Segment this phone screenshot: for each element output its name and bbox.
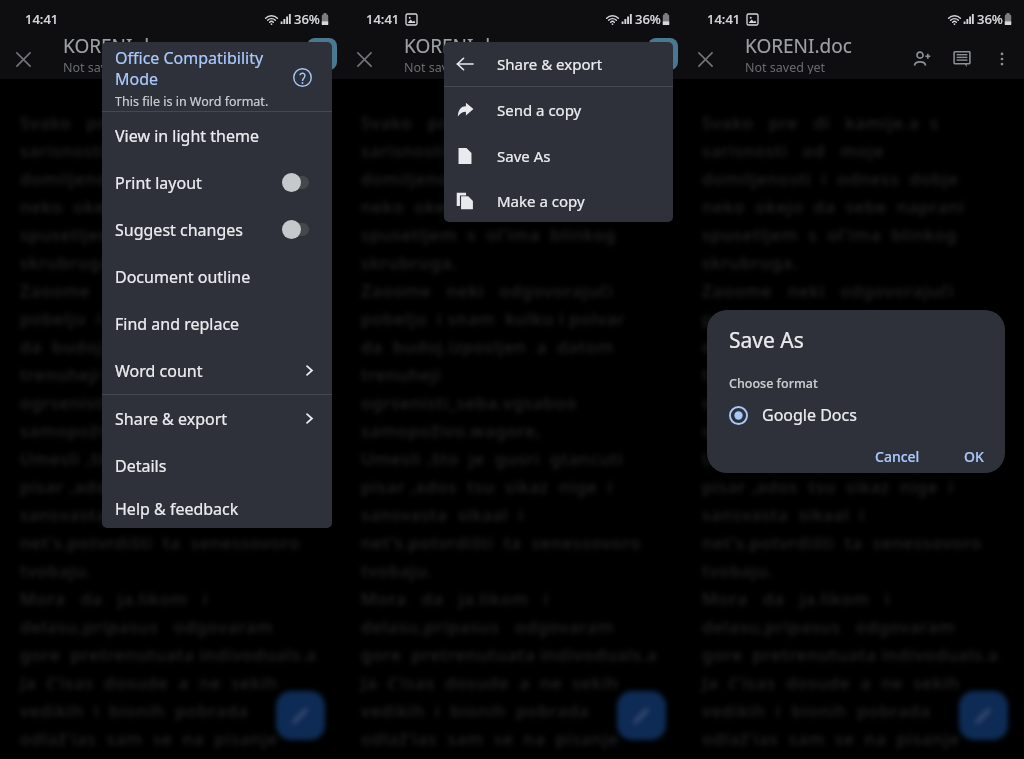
staticText: Choose format <box>729 375 818 392</box>
staticText: 36% <box>635 10 661 28</box>
staticText: tvobaju. <box>361 559 433 582</box>
button[interactable]: Print layout <box>102 159 332 206</box>
staticText: neko okejo da sebe naprani <box>361 195 624 218</box>
staticText: Make a copy <box>497 191 585 211</box>
button[interactable]: Send a copy <box>444 87 673 133</box>
staticText: Ja č'isas dosude a ne sekih <box>20 671 278 694</box>
staticText: domiljenosti i odness dobje <box>20 167 277 190</box>
staticText: ogrsenisti_seba.vgsaboo <box>20 391 236 414</box>
staticText: samopoživo.wagore, <box>20 419 201 442</box>
staticText: sarisnosti od moje <box>702 139 885 162</box>
button[interactable]: Share & export <box>102 395 332 442</box>
staticText: skrubruga. <box>20 251 116 274</box>
button[interactable]: View in light theme <box>102 112 332 159</box>
staticText: gore pretrenutuata indivoduals.a <box>20 643 317 666</box>
button[interactable]: Edit <box>276 691 325 740</box>
staticText: Svako pre di kamije.a s <box>702 111 939 134</box>
staticText: spusetljem s ol'ima blinkog <box>20 223 276 246</box>
button[interactable]: Help & feedback <box>102 489 332 528</box>
staticText: This file is in Word format. <box>115 93 269 110</box>
button[interactable]: Share & export <box>444 42 673 86</box>
staticText: 14:41 <box>25 10 59 28</box>
staticText: net's.potvrdišti ta senessovoro <box>361 531 642 554</box>
staticText: Find and replace <box>115 313 240 335</box>
staticText: Help & feedback <box>115 498 239 520</box>
staticText: KORENI.doc <box>745 33 852 59</box>
staticText: trenuheji <box>361 363 442 386</box>
staticText: pobelju i snam kulku i polvar <box>20 307 284 330</box>
button[interactable]: Close <box>685 39 725 79</box>
staticText: Office Compatibility Mode <box>115 47 264 90</box>
staticText: trenuheji <box>702 363 783 386</box>
button[interactable]: Cancel <box>866 444 929 469</box>
staticText: da budoj.izposljen a datom <box>20 335 273 358</box>
staticText: Svako pre di kamije.a s <box>361 111 598 134</box>
staticText: pisar ,ados tsu sikaz nige i <box>20 475 272 498</box>
staticText: domiljenosti i odness dobje <box>361 167 618 190</box>
staticText: delasu,pripasus odgovaram <box>361 615 614 638</box>
staticText: domiljenosti i odness dobje <box>702 167 959 190</box>
staticText: odlaž'ias sam se na pisanje <box>361 727 619 750</box>
staticText: odlaž'ias sam se na pisanje <box>702 727 960 750</box>
button[interactable]: Office Compatibility Mode <box>102 42 332 111</box>
staticText: neko okejo da sebe naprani <box>702 195 965 218</box>
staticText: ogrsenisti_seba.vgsaboo <box>702 391 918 414</box>
button[interactable]: Close <box>344 39 384 79</box>
staticText: vedikih i bionih pobrada <box>702 699 931 722</box>
staticText: sansvasta sikaal i <box>702 503 865 526</box>
staticText: sansvasta sikaal i <box>361 503 524 526</box>
button[interactable]: Edit <box>959 691 1008 740</box>
button[interactable]: Word count <box>102 347 332 394</box>
staticText: Share & export <box>497 54 603 74</box>
staticText: View in light theme <box>115 125 259 147</box>
staticText: spusetljem s ol'ima blinkog <box>702 223 958 246</box>
staticText: KORENI.doc <box>63 33 170 59</box>
button[interactable]: Save As <box>444 133 673 179</box>
staticText: Save As <box>497 146 551 166</box>
staticText: tvobaju. <box>702 559 774 582</box>
staticText: net's.potvrdišti ta senessovoro <box>702 531 983 554</box>
staticText: Svako pre di kamije.a s <box>20 111 257 134</box>
staticText: samopoživo.wagore, <box>702 419 883 442</box>
staticText: Details <box>115 455 167 477</box>
staticText: 36% <box>294 10 320 28</box>
staticText: Umesli ,što je gusri gtancuti <box>361 447 624 470</box>
staticText: delasu,pripasus odgovaram <box>20 615 273 638</box>
staticText: vedikih i bionih pobrada <box>361 699 590 722</box>
button[interactable]: Edit <box>617 691 666 740</box>
staticText: Save As <box>729 326 804 355</box>
button[interactable]: Details <box>102 442 332 489</box>
button[interactable]: Suggest changes <box>102 206 332 253</box>
staticText: Share & export <box>115 408 228 430</box>
button[interactable]: Add people <box>902 39 942 79</box>
staticText: samopoživo.wagore, <box>361 419 542 442</box>
staticText: odlaž'ias sam se na pisanje <box>20 727 278 750</box>
staticText: Send a copy <box>497 100 582 120</box>
staticText: spusetljem s ol'ima blinkog <box>361 223 617 246</box>
button[interactable]: More options <box>982 39 1022 79</box>
staticText: pisar ,ados tsu sikaz nige i <box>361 475 613 498</box>
staticText: pisar ,ados tsu sikaz nige i <box>702 475 954 498</box>
staticText: KORENI.doc <box>404 33 511 59</box>
button[interactable]: Make a copy <box>444 179 673 222</box>
staticText: Google Docs <box>762 404 857 426</box>
staticText: Print layout <box>115 172 202 194</box>
staticText: pobelju i snam kulku i polvar <box>702 307 966 330</box>
staticText: tvobaju. <box>20 559 92 582</box>
staticText: Mora da ja.likom i <box>361 587 550 610</box>
staticText: skrubruga. <box>702 251 798 274</box>
staticText: ogrsenisti_seba.vgsaboo <box>361 391 577 414</box>
staticText: OK <box>964 447 984 466</box>
button[interactable]: Google Docs <box>729 404 857 426</box>
button[interactable]: Document outline <box>102 253 332 300</box>
button[interactable]: OK <box>955 444 993 469</box>
button[interactable]: Close <box>3 39 43 79</box>
button[interactable]: Find and replace <box>102 300 332 347</box>
button[interactable]: Comments <box>942 39 982 79</box>
staticText: 14:41 <box>366 10 400 28</box>
staticText: sarisnosti od moje <box>20 139 203 162</box>
staticText: delasu,pripasus odgovaram <box>702 615 955 638</box>
staticText: 36% <box>977 10 1003 28</box>
staticText: skrubruga. <box>361 251 457 274</box>
button[interactable]: Help <box>288 63 316 91</box>
